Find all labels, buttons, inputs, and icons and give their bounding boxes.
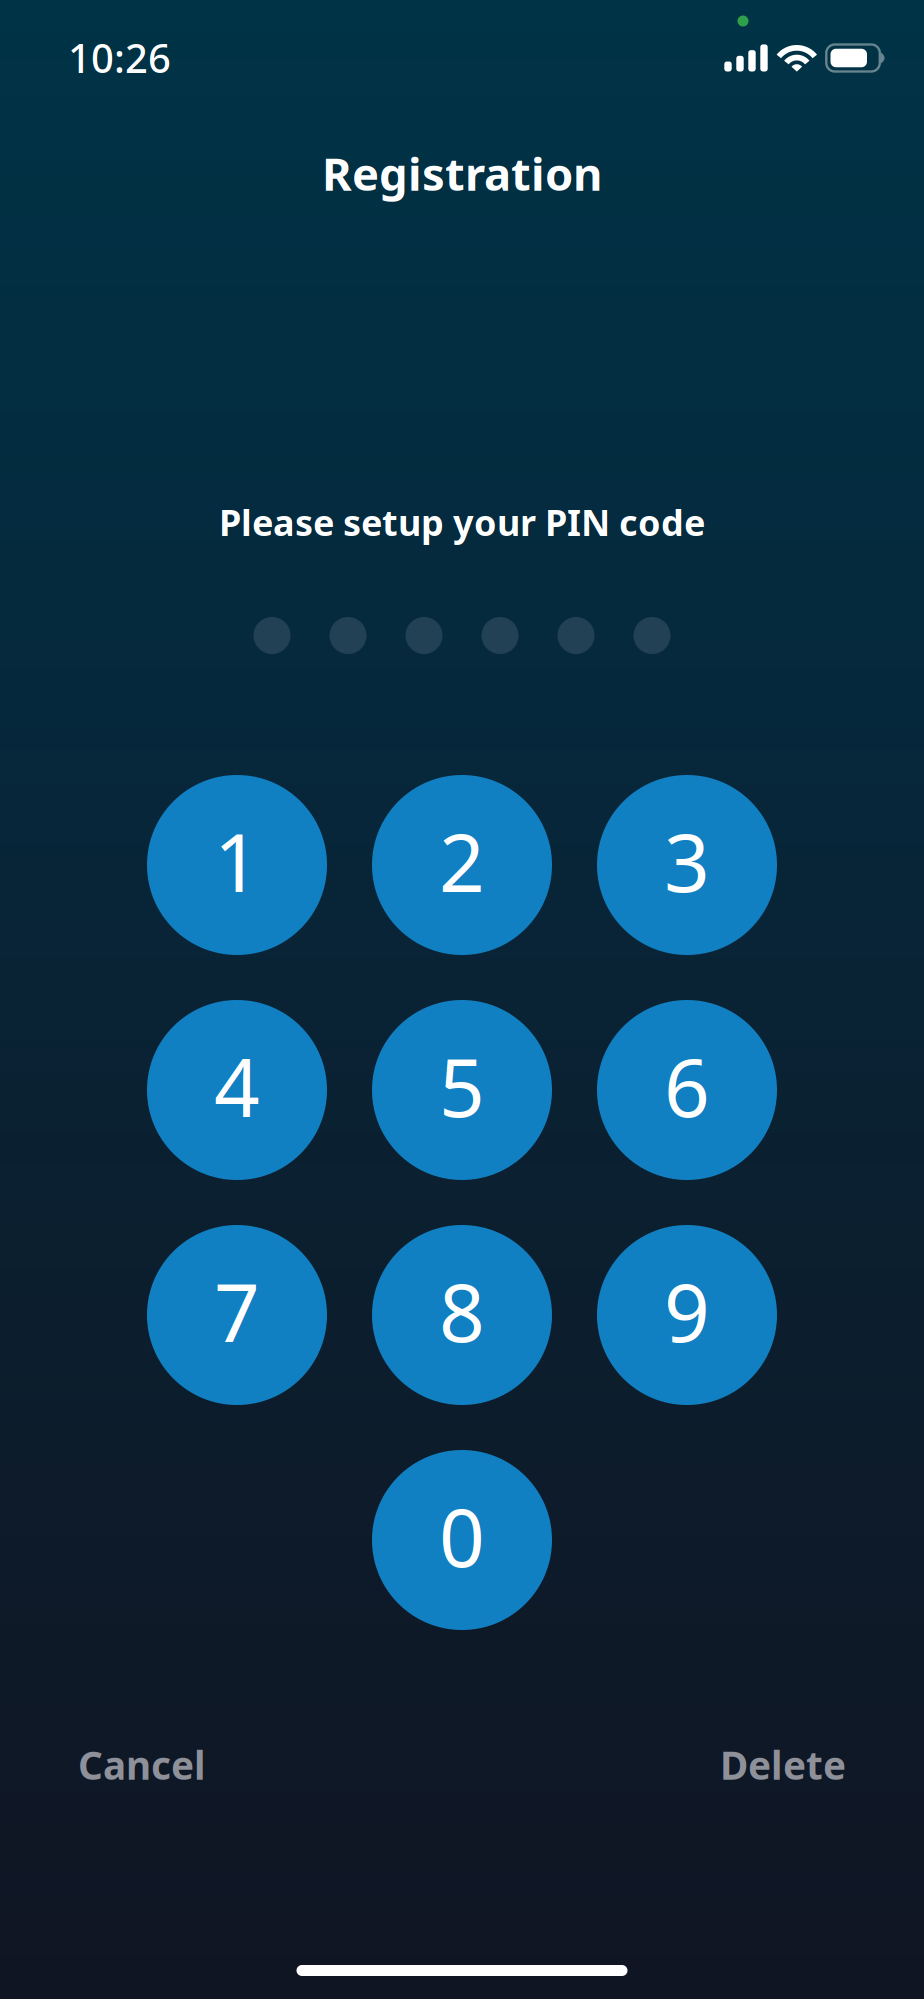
staticText: 1: [214, 808, 260, 914]
staticText: 4: [214, 1033, 260, 1139]
staticText: 5: [439, 1033, 485, 1139]
staticText: Please setup your PIN code: [219, 498, 705, 546]
staticText: 10:26: [68, 31, 171, 84]
button[interactable]: 7: [147, 1225, 327, 1405]
button[interactable]: 3: [597, 775, 777, 955]
staticText: 2: [439, 808, 485, 914]
staticText: 6: [664, 1033, 710, 1139]
button[interactable]: 5: [372, 1000, 552, 1180]
staticText: Registration: [322, 143, 602, 203]
staticText: Delete: [720, 1739, 846, 1790]
button[interactable]: 6: [597, 1000, 777, 1180]
button[interactable]: 1: [147, 775, 327, 955]
staticText: 9: [664, 1258, 710, 1364]
staticText: 0: [439, 1483, 485, 1589]
button[interactable]: Cancel: [78, 1739, 206, 1790]
button[interactable]: 2: [372, 775, 552, 955]
button[interactable]: 0: [372, 1450, 552, 1630]
button[interactable]: 8: [372, 1225, 552, 1405]
button[interactable]: 9: [597, 1225, 777, 1405]
staticText: 7: [214, 1258, 260, 1364]
staticText: Cancel: [78, 1739, 206, 1790]
button[interactable]: 4: [147, 1000, 327, 1180]
staticText: 8: [439, 1258, 485, 1364]
staticText: 3: [664, 808, 710, 914]
button[interactable]: Delete: [720, 1739, 846, 1790]
